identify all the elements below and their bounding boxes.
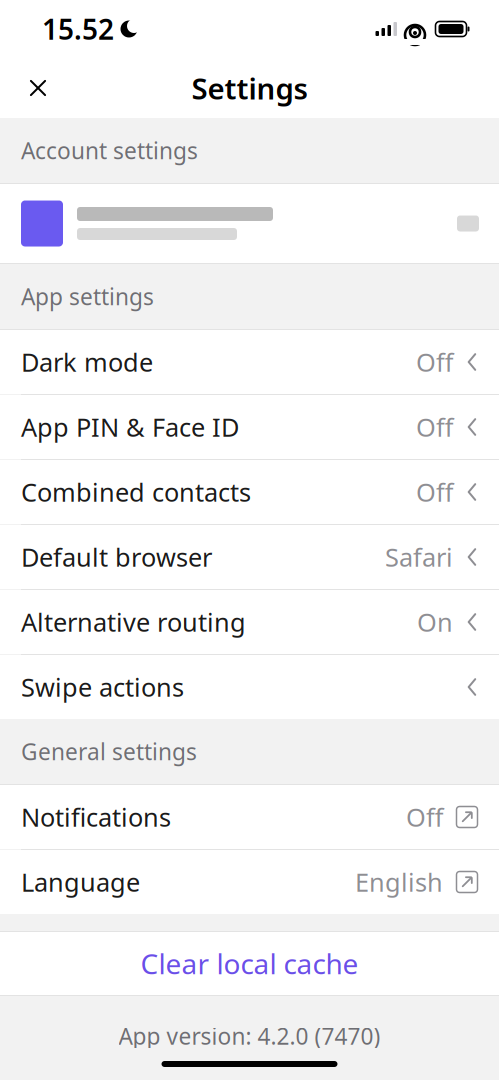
staticText: Swipe actions (21, 670, 184, 704)
staticText: Account settings (21, 135, 198, 165)
staticText: Combined contacts (21, 475, 251, 509)
staticText: Clear local cache (140, 945, 358, 982)
staticText: App version: 4.2.0 (7470) (118, 1021, 380, 1051)
staticText: App PIN & Face ID (21, 410, 239, 444)
button[interactable]: Clear local cache (0, 932, 499, 995)
staticText: Off (416, 475, 453, 509)
staticText: Language (21, 865, 140, 899)
staticText: English (355, 865, 443, 899)
button[interactable]: App PIN & Face ID (0, 395, 499, 459)
staticText: Safari (385, 540, 453, 574)
staticText: Off (416, 345, 453, 379)
button[interactable]: Close (16, 66, 60, 110)
staticText: Dark mode (21, 345, 153, 379)
staticText: General settings (21, 736, 197, 766)
staticText: Default browser (21, 540, 212, 574)
button[interactable]: Notifications (0, 785, 499, 849)
button[interactable]: Swipe actions (0, 655, 499, 719)
button[interactable]: Alternative routing (0, 590, 499, 654)
button[interactable] (0, 184, 499, 263)
button[interactable]: Combined contacts (0, 460, 499, 524)
button[interactable]: Dark mode (0, 330, 499, 394)
staticText: App settings (21, 281, 154, 311)
staticText: 15.52 (42, 10, 114, 48)
button[interactable]: Default browser (0, 525, 499, 589)
button[interactable]: Language (0, 850, 499, 914)
staticText: On (417, 605, 453, 639)
staticText: Notifications (21, 800, 171, 834)
staticText: Settings (191, 68, 307, 107)
staticText: Off (416, 410, 453, 444)
staticText: Alternative routing (21, 605, 246, 639)
staticText: Off (406, 800, 443, 834)
